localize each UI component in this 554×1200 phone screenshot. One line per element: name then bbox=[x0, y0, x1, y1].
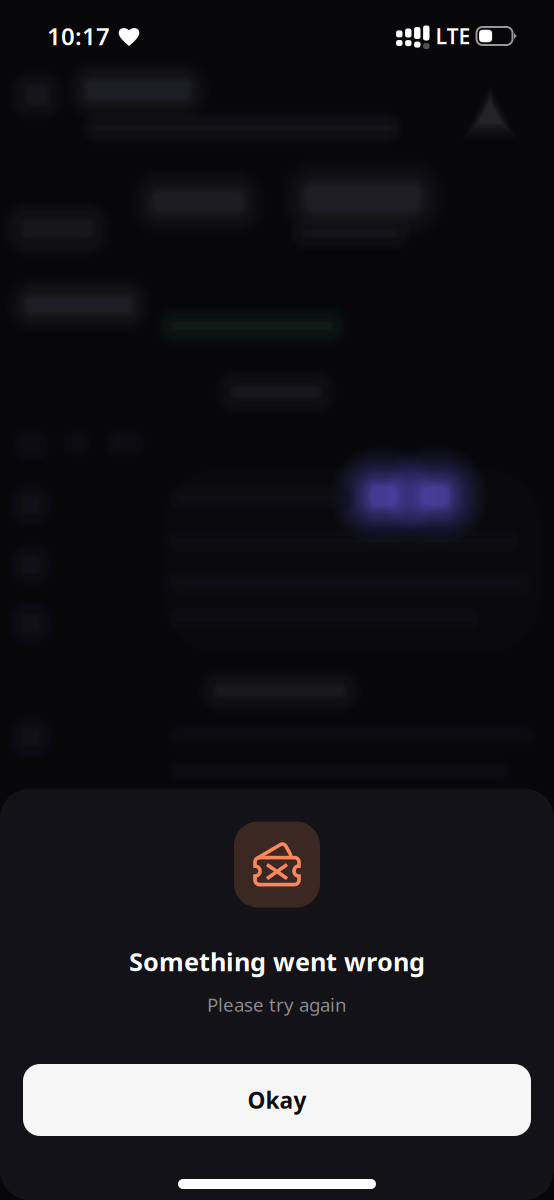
button[interactable]: Okay bbox=[23, 1064, 531, 1136]
staticText: 10:17 bbox=[47, 20, 110, 52]
staticText: Okay bbox=[247, 1085, 306, 1115]
staticText: Please try again bbox=[207, 992, 347, 1017]
staticText: Something went wrong bbox=[129, 945, 425, 978]
staticText: LTE bbox=[435, 22, 470, 50]
